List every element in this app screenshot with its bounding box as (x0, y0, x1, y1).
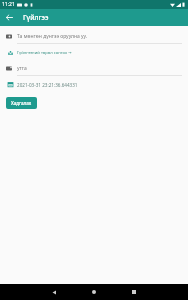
button[interactable]: утга (0, 62, 188, 78)
button[interactable]: Хадгалах (6, 97, 37, 109)
button[interactable]: Гүйлгээний төрөл сонгох → (0, 46, 188, 62)
staticText: утга (17, 65, 27, 72)
button[interactable]: Home (87, 285, 101, 299)
button[interactable]: 2021-03-31 23:21:36.644331 (0, 78, 188, 94)
button[interactable]: Back (0, 9, 18, 26)
staticText: 2021-03-31 23:21:36.644331 (17, 82, 78, 88)
staticText: Хадгалах (11, 100, 32, 106)
button[interactable]: Back (47, 285, 61, 299)
staticText: Гүйлгээний төрөл сонгох → (17, 50, 72, 56)
staticText: 11:21 (2, 1, 15, 8)
staticText: Та мөнгөн дүнгээ оруулна уу. (17, 33, 88, 40)
button[interactable]: Та мөнгөн дүнгээ оруулна уу. (0, 30, 188, 46)
staticText: Гүйлгээ (23, 13, 49, 22)
button[interactable]: Recent apps (127, 285, 141, 299)
